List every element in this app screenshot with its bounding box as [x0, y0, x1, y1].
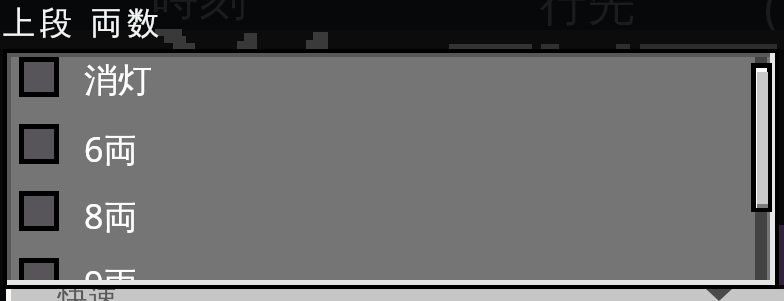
button[interactable]: 6両 — [11, 124, 770, 191]
button[interactable]: 消灯 — [11, 57, 770, 124]
button[interactable]: 8両 — [11, 191, 770, 258]
staticText: 上段 両数 — [3, 0, 165, 44]
button[interactable]: Expand — [706, 289, 732, 301]
staticText: 行先 — [539, 0, 635, 34]
staticText: ( — [764, 0, 779, 39]
staticText: 消灯 — [84, 59, 152, 102]
staticText: 8両 — [84, 193, 138, 239]
staticText: 9両 — [84, 260, 138, 280]
staticText: 快速 — [58, 280, 118, 301]
button[interactable]: Scroll — [751, 63, 772, 212]
staticText: 6両 — [84, 126, 138, 172]
button[interactable]: 9両 — [11, 258, 770, 280]
staticText: 時刻 — [151, 0, 247, 28]
